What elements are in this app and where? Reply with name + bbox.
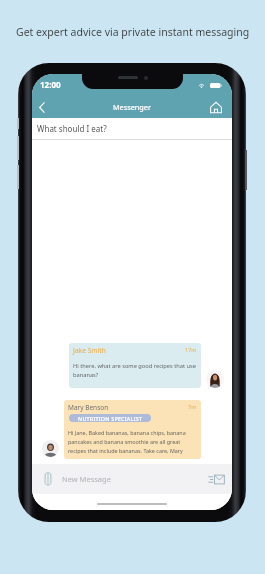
staticText: Hi there, what are some good recipes tha… [73, 362, 199, 379]
button[interactable]: Mary Benson [64, 400, 201, 459]
staticText: Hi Jane, Baked bananas, banana chips, ba… [68, 429, 194, 454]
staticText: 7m [188, 403, 197, 410]
staticText: New Message [62, 474, 111, 484]
staticText: Jake Smith [73, 346, 106, 355]
staticText: 17m [185, 346, 197, 353]
button[interactable]: Attach file [39, 470, 57, 488]
button[interactable]: Jake Smith [69, 343, 201, 388]
staticText: 12:00 [40, 79, 61, 90]
button[interactable]: Back [32, 97, 52, 117]
staticText: Mary Benson [68, 403, 109, 412]
button[interactable]: Send [206, 469, 226, 489]
staticText: What should I eat? [37, 123, 107, 134]
staticText: NUTRITION SPECIALIST [78, 415, 143, 422]
staticText: Messenger [113, 102, 151, 112]
staticText: Get expert advice via private instant me… [16, 25, 250, 39]
button[interactable]: Home [206, 97, 226, 117]
